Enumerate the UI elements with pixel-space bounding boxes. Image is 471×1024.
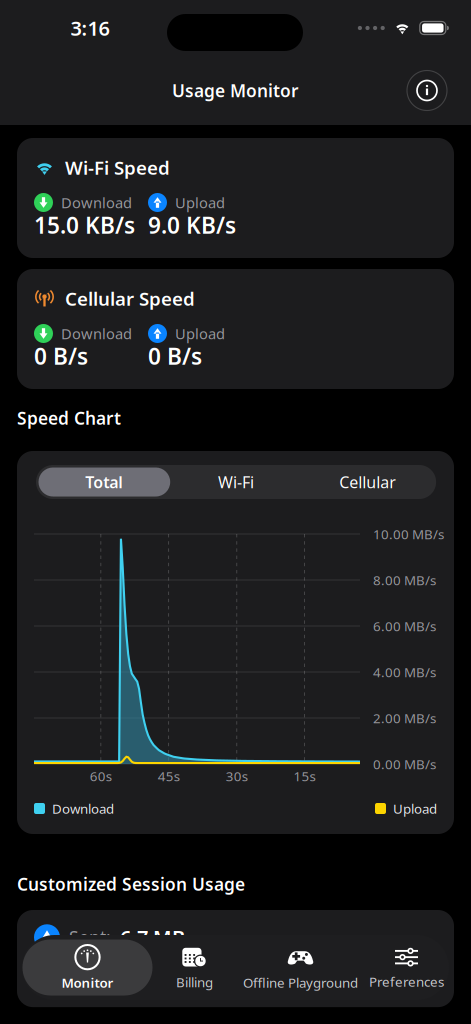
button[interactable]: Total [38, 467, 170, 496]
staticText: 6.00 MB/s [373, 617, 436, 635]
staticText: 6.7 MB [120, 924, 185, 951]
staticText: 60s [90, 767, 112, 785]
staticText: Wi-Fi [218, 471, 254, 493]
staticText: 2.00 MB/s [373, 709, 436, 727]
staticText: Cellular Speed [65, 286, 195, 311]
button[interactable]: Monitor [22, 935, 152, 999]
staticText: 8.00 MB/s [373, 571, 436, 589]
staticText: Offline Playground [243, 974, 358, 991]
staticText: Cellular [339, 471, 396, 493]
button[interactable]: Wi-Fi [170, 467, 302, 496]
staticText: 0.00 MB/s [373, 755, 436, 773]
staticText: Speed Chart [17, 406, 121, 429]
staticText: Download [61, 193, 132, 212]
button[interactable]: Cellular [302, 467, 434, 496]
staticText: 0 B/s [148, 341, 202, 371]
staticText: Sent: [69, 926, 111, 949]
staticText: 15s [294, 767, 316, 785]
staticText: Total [85, 471, 123, 493]
staticText: Upload [393, 800, 437, 817]
staticText: 4.00 MB/s [373, 663, 436, 681]
staticText: Upload [175, 324, 225, 343]
staticText: 45s [158, 767, 180, 785]
staticText: Monitor [61, 974, 113, 991]
staticText: Received: [69, 966, 147, 989]
staticText: 15.0 KB/s [34, 210, 135, 240]
staticText: 30s [226, 767, 248, 785]
staticText: Preferences [369, 973, 444, 990]
staticText: Billing [176, 973, 213, 991]
staticText: Wi-Fi Speed [65, 155, 170, 180]
button[interactable]: Info [404, 67, 450, 113]
staticText: Upload [175, 193, 225, 212]
staticText: Download [61, 324, 132, 343]
staticText: Customized Session Usage [17, 872, 245, 895]
button[interactable]: Preferences [364, 935, 448, 999]
staticText: 3:16 [70, 15, 109, 41]
staticText: 22.2 MB [156, 965, 232, 991]
staticText: Usage Monitor [172, 79, 299, 102]
staticText: 10.00 MB/s [373, 525, 444, 543]
staticText: 9.0 KB/s [148, 210, 236, 240]
button[interactable]: Billing [152, 935, 236, 999]
button[interactable]: Offline Playground [236, 935, 364, 999]
staticText: 0 B/s [34, 341, 88, 371]
staticText: Download [52, 800, 114, 817]
